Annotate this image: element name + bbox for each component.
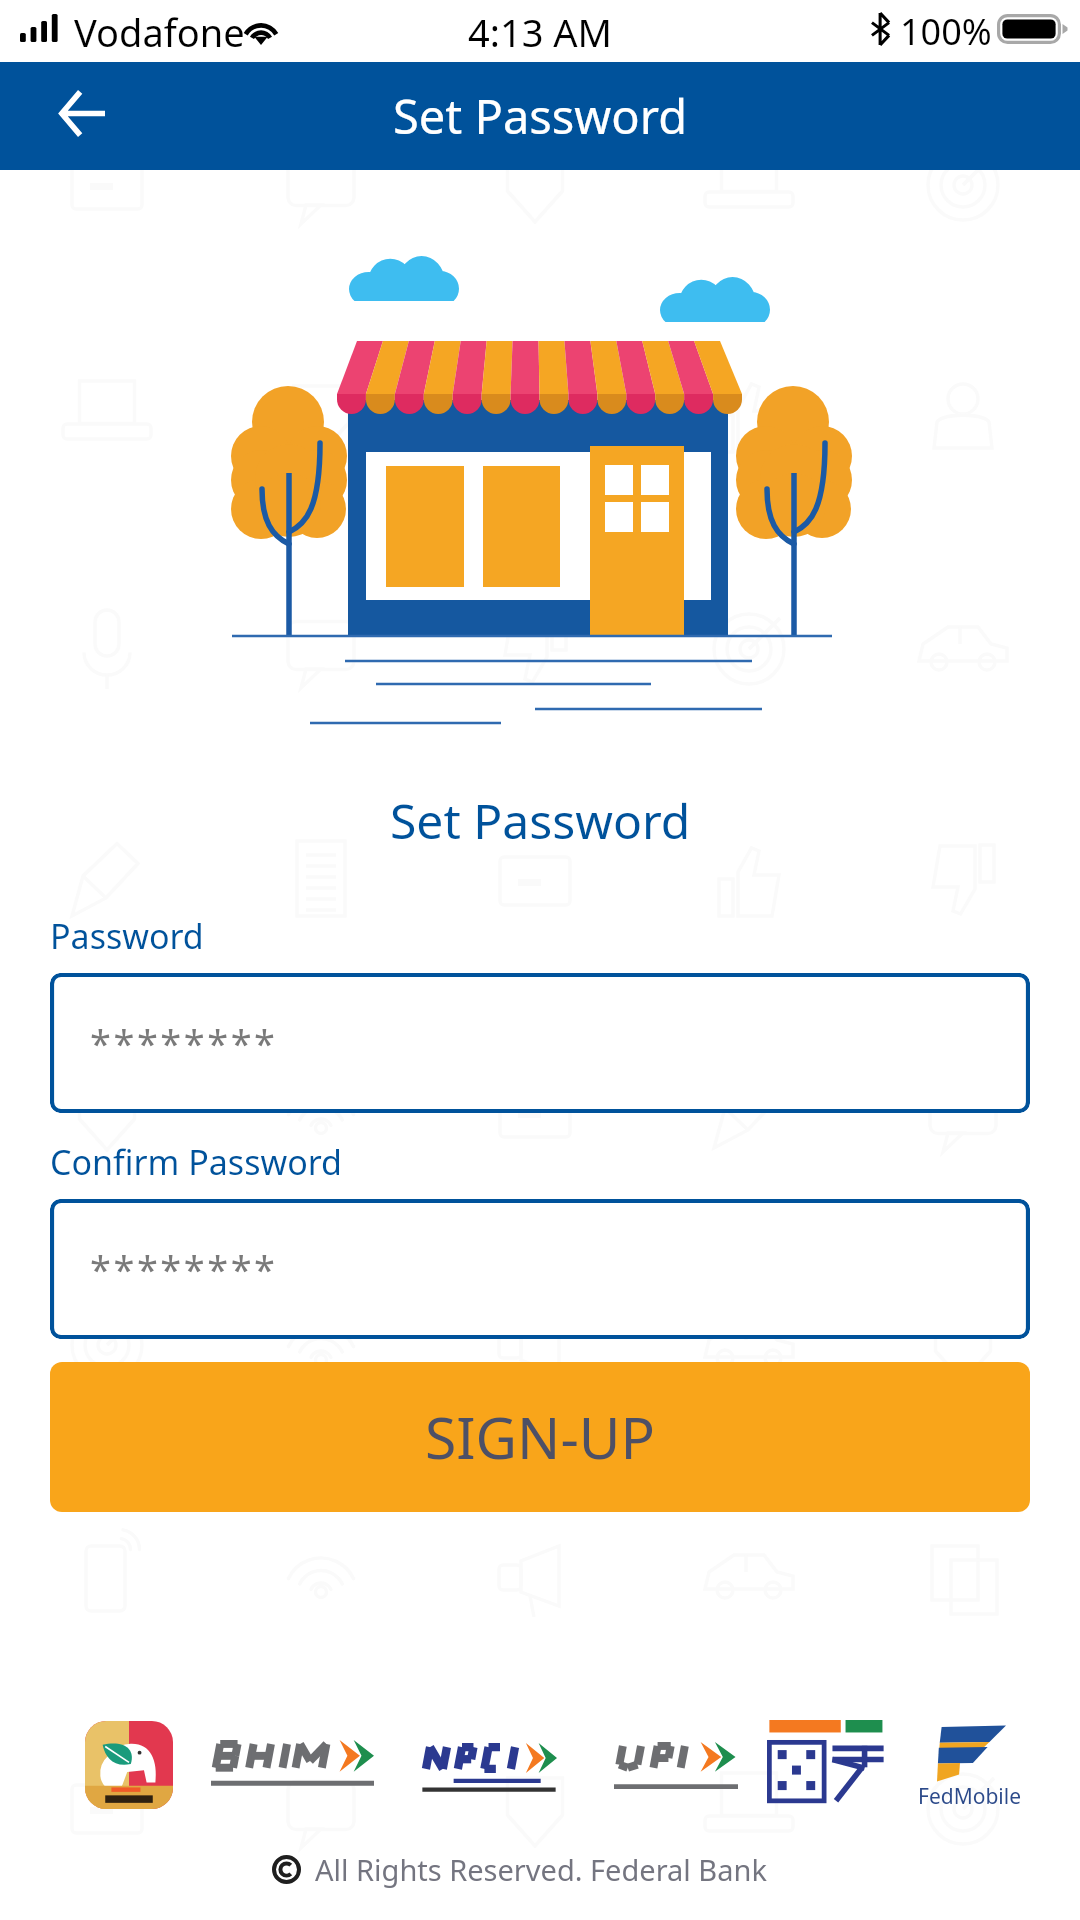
staticText: Set Password [390, 788, 691, 840]
button[interactable]: SIGN-UP [50, 1362, 1030, 1512]
staticText: 100% [900, 7, 992, 56]
staticText: Vodafone [74, 6, 245, 58]
staticText: All Rights Reserved. Federal Bank [315, 1850, 767, 1889]
staticText: 4:13 AM [468, 6, 613, 58]
staticText: FedMobile [918, 1782, 1022, 1811]
staticText: Set Password [393, 84, 688, 148]
staticText: Password [50, 913, 204, 959]
staticText: Confirm Password [50, 1139, 342, 1185]
button[interactable]: ******** [50, 973, 1030, 1113]
staticText: ******** [90, 1243, 278, 1295]
staticText: ******** [90, 1017, 278, 1069]
staticText: SIGN-UP [425, 1398, 655, 1476]
button[interactable]: Back [30, 62, 134, 164]
button[interactable]: ******** [50, 1199, 1030, 1339]
